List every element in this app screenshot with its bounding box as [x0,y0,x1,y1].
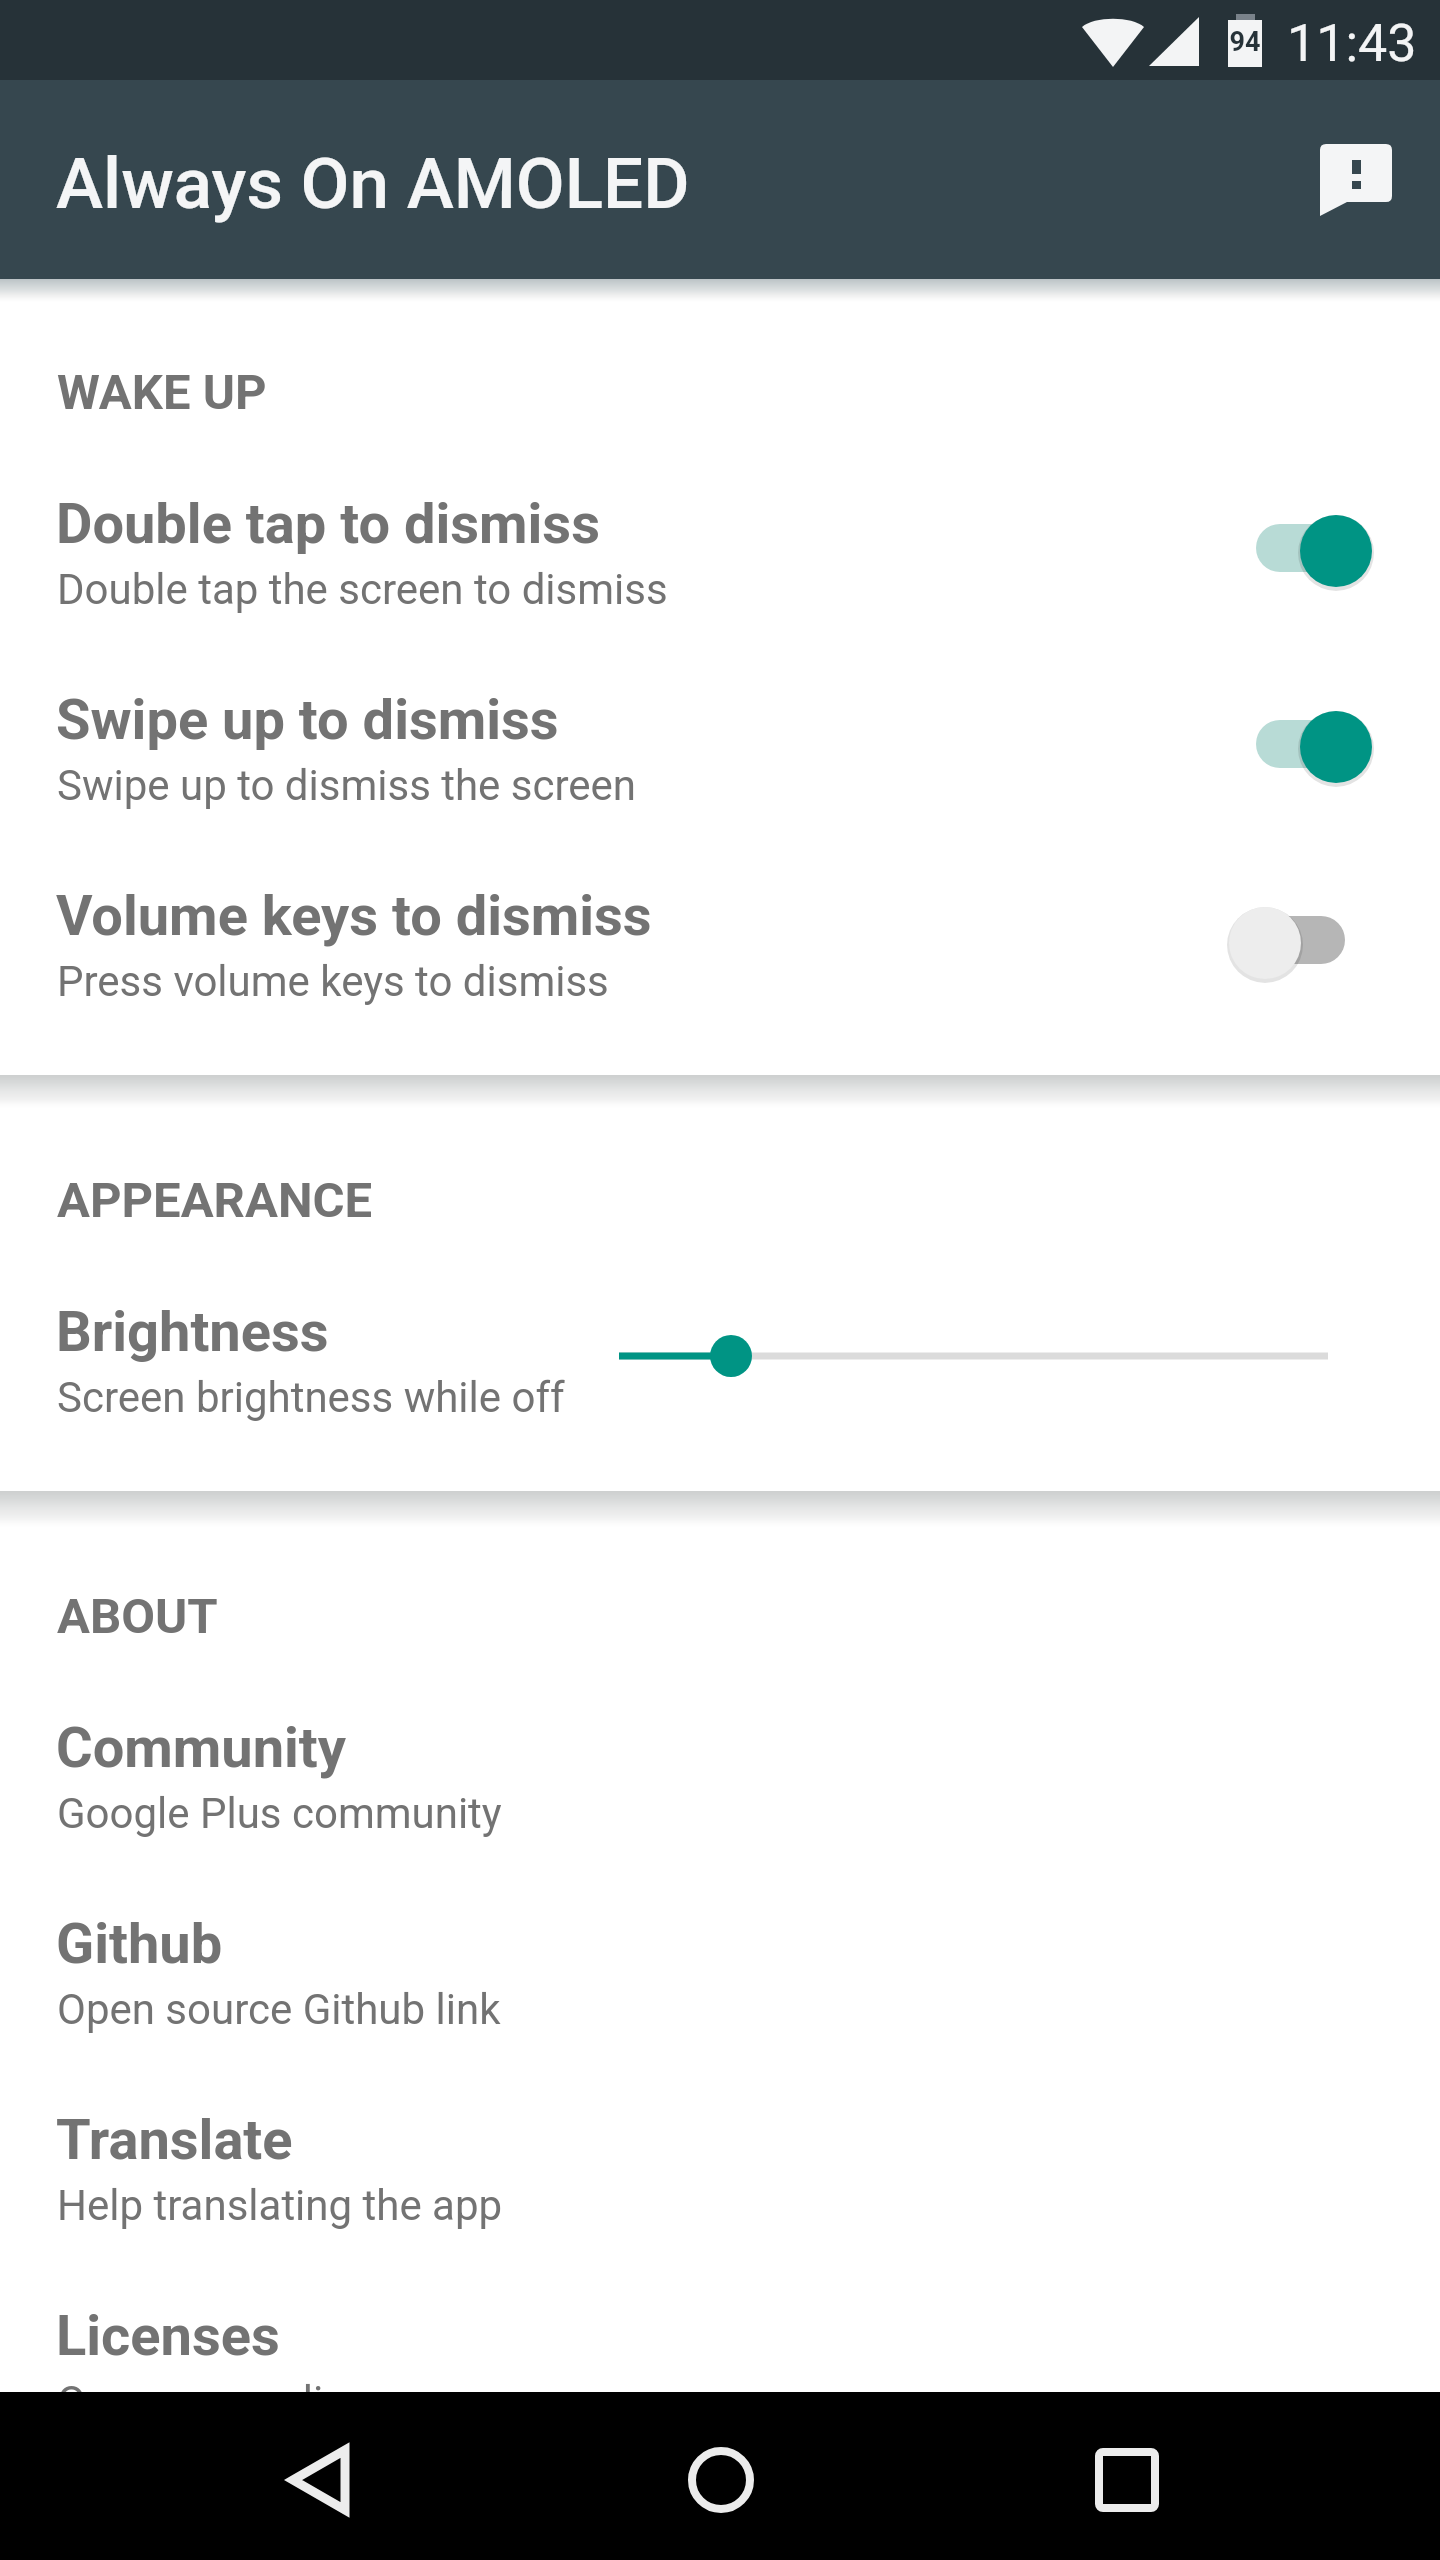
staticText: Help translating the app [57,2181,503,2230]
button[interactable]: Volume keys to dismiss [0,847,1440,1043]
button[interactable]: Double tap to dismiss [0,455,1440,651]
button[interactable]: Recents [1032,2396,1222,2560]
button[interactable]: Swipe up to dismiss [0,651,1440,847]
staticText: Github [56,1911,223,1977]
button[interactable]: Github [0,1875,1440,2071]
button[interactable]: Feedback [1296,120,1416,240]
staticText: Google Plus community [57,1789,502,1838]
button[interactable]: Translate [0,2071,1440,2267]
staticText: Double tap the screen to dismiss [57,565,668,614]
staticText: 11:43 [1287,13,1417,74]
button[interactable]: Home [626,2396,816,2560]
button[interactable]: Licenses [0,2267,1440,2463]
button[interactable]: Brightness [0,1263,1440,1459]
button[interactable]: Back [224,2396,414,2560]
staticText: APPEARANCE [57,1172,373,1229]
staticText: Screen brightness while off [57,1373,565,1422]
staticText: Translate [56,2107,293,2173]
staticText: Open source licenses [57,2377,457,2426]
staticText: Press volume keys to dismiss [57,957,609,1006]
staticText: Open source Github link [57,1985,501,2034]
staticText: Always On AMOLED [56,142,690,225]
staticText: Volume keys to dismiss [56,883,652,949]
staticText: Community [56,1715,346,1781]
staticText: 94 [1227,26,1263,58]
staticText: WAKE UP [57,364,267,421]
staticText: Licenses [56,2303,280,2369]
staticText: Swipe up to dismiss the screen [57,761,637,810]
button[interactable]: Community [0,1679,1440,1875]
staticText: Double tap to dismiss [56,491,600,557]
staticText: Swipe up to dismiss [56,687,559,753]
staticText: Brightness [56,1299,329,1365]
staticText: ABOUT [57,1588,218,1645]
